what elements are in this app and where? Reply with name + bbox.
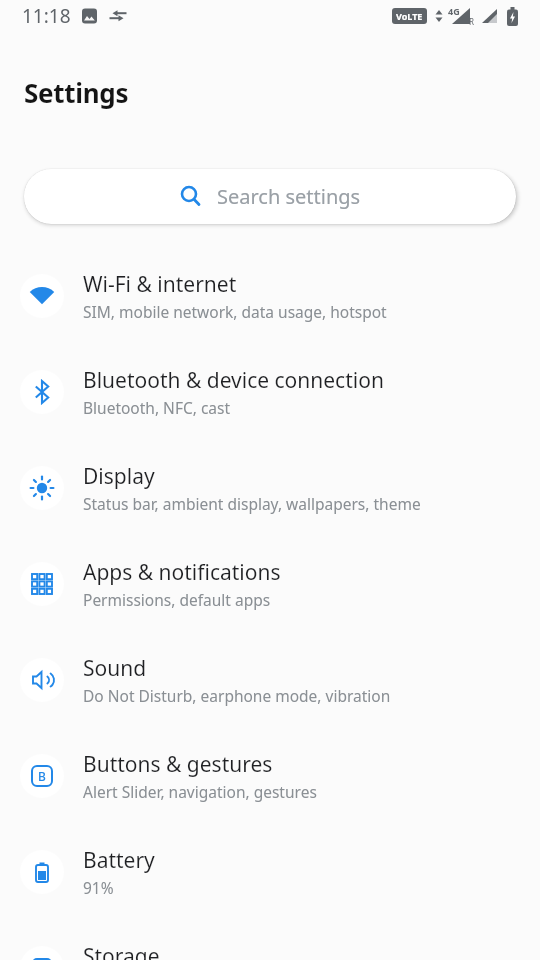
staticText: Wi-Fi & internet xyxy=(83,270,237,299)
staticText: Search settings xyxy=(217,183,361,210)
staticText: Sound xyxy=(83,654,147,683)
button[interactable]: Battery xyxy=(0,824,540,920)
staticText: R xyxy=(469,16,474,27)
button[interactable]: Bluetooth & device connection xyxy=(0,344,540,440)
button[interactable]: Display xyxy=(0,440,540,536)
staticText: Bluetooth, NFC, cast xyxy=(83,397,231,418)
button[interactable]: Storage xyxy=(0,920,540,960)
staticText: 91% xyxy=(83,877,114,898)
staticText: Bluetooth & device connection xyxy=(83,366,384,395)
staticText: Storage xyxy=(83,942,160,960)
staticText: 4G xyxy=(448,5,460,17)
staticText: Buttons & gestures xyxy=(83,750,273,779)
staticText: Apps & notifications xyxy=(83,558,281,587)
button[interactable]: Sound xyxy=(0,632,540,728)
button[interactable]: Apps & notifications xyxy=(0,536,540,632)
button[interactable]: Search settings xyxy=(24,169,516,224)
button[interactable]: Wi-Fi & internet xyxy=(0,248,540,344)
staticText: Display xyxy=(83,462,155,491)
staticText: Alert Slider, navigation, gestures xyxy=(83,781,317,802)
staticText: Status bar, ambient display, wallpapers,… xyxy=(83,493,421,514)
staticText: SIM, mobile network, data usage, hotspot xyxy=(83,301,387,322)
staticText: VoLTE xyxy=(396,10,423,22)
staticText: Settings xyxy=(24,75,129,110)
button[interactable]: B xyxy=(0,728,540,824)
staticText: 11:18 xyxy=(22,3,71,29)
staticText: Battery xyxy=(83,846,155,875)
staticText: Permissions, default apps xyxy=(83,589,271,610)
staticText: B xyxy=(38,768,46,784)
staticText: Do Not Disturb, earphone mode, vibration xyxy=(83,685,391,706)
